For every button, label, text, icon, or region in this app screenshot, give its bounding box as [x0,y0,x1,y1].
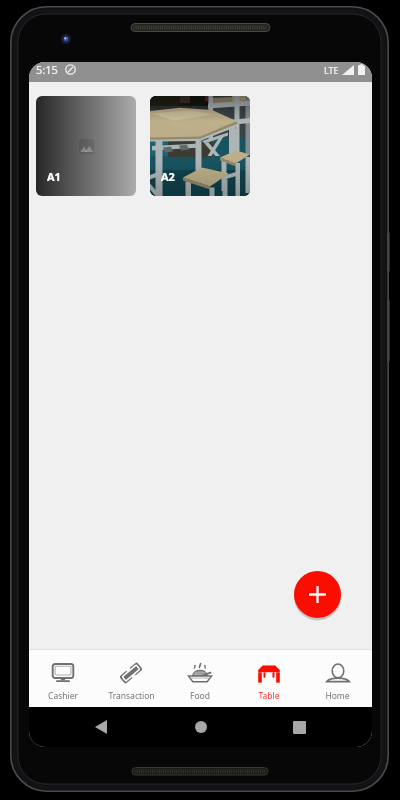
staticText: A1 [47,169,61,184]
staticText: 5:15 [36,62,58,77]
staticText: A2 [161,169,175,184]
button[interactable]: Recent apps [282,710,316,744]
button[interactable]: Food [165,650,234,707]
staticText: Transaction [108,690,155,702]
button[interactable]: Table [234,650,303,707]
button[interactable]: Cashier [29,650,97,707]
button[interactable]: Home [303,650,372,707]
button[interactable]: Home [184,710,218,744]
staticText: Food [190,690,210,702]
button[interactable]: A1 [36,96,136,196]
button[interactable]: Back [84,710,118,744]
staticText: Table [258,690,280,702]
button[interactable]: Add table [294,571,341,618]
button[interactable]: Transaction [97,650,165,707]
staticText: LTE [324,64,339,76]
staticText: Cashier [48,690,78,702]
button[interactable]: A2 [150,96,250,196]
staticText: Home [325,690,350,702]
